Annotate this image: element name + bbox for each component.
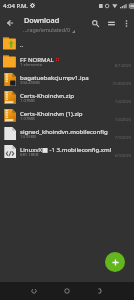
staticText: 1.07MB [20,116,35,122]
staticText: 1 elemento [20,62,43,68]
staticText: 8/1/2025 [114,63,131,68]
button[interactable]: Back [25,282,43,300]
staticText: 7/4/2025 [114,99,131,104]
button[interactable]: LinuxvX■ -1 3.mobileconfig.xml [0,142,134,160]
staticText: signed_khoindvn.mobileconfig [20,127,108,135]
staticText: 1.07MB [20,98,35,104]
button[interactable]: More options [119,16,133,30]
button[interactable]: Recent apps [91,282,109,300]
staticText: Certs-Khoindvn (1).zip [20,109,83,117]
staticText: 14.93KB [20,134,37,140]
button[interactable]: Home [58,282,76,300]
staticText: FF NORMAL [20,55,54,63]
staticText: 6/9/2025 [114,153,131,158]
button[interactable]: Search [87,15,103,31]
button[interactable]: Certs-Khoindvn.zip [0,88,134,106]
staticText: 7/4/2025 [114,117,131,122]
button[interactable]: bagatuebakcjumpv1.ipa [0,70,134,88]
button[interactable]: FF NORMAL [0,52,134,70]
staticText: 304.45MB [20,80,40,86]
button[interactable]: Back [2,15,18,31]
staticText: 31/8/2025 [112,81,131,86]
button[interactable]: Certs-Khoindvn (1).zip [0,106,134,124]
staticText: .. [20,40,24,48]
button[interactable]: signed_khoindvn.mobileconfig [0,124,134,142]
staticText: bagatuebakcjumpv1.ipa [20,73,89,81]
staticText: ...rage/emulated/0 [23,26,71,33]
staticText: 7/9/2025 [114,135,131,140]
button[interactable]: Add new [105,252,125,272]
staticText: Download [24,15,60,25]
staticText: 4:04 P.M. [3,2,28,10]
staticText: 681.18KB [20,152,39,158]
staticText: LinuxvX■ -1 3.mobileconfig.xml [20,145,112,153]
button[interactable]: Sort [103,15,119,31]
button[interactable]: .. [0,34,134,52]
staticText: Certs-Khoindvn.zip [20,91,74,99]
